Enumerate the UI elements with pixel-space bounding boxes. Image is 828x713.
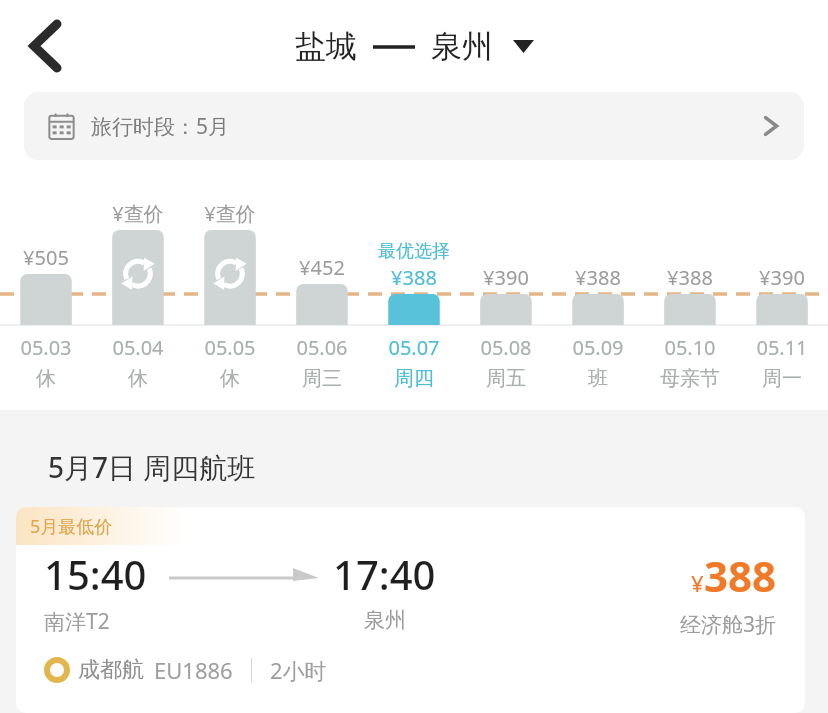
staticText: 05.09	[552, 334, 644, 361]
staticText: 388	[704, 547, 777, 604]
staticText: 05.03	[0, 334, 92, 361]
staticText: 泉州	[364, 607, 406, 633]
button[interactable]: ¥505	[0, 194, 92, 394]
staticText: 周一	[736, 366, 828, 391]
staticText: 5月最低价	[30, 514, 113, 539]
staticText: 05.05	[184, 334, 276, 361]
button[interactable]: ¥388	[644, 194, 736, 394]
staticText: 05.10	[644, 334, 736, 361]
button[interactable]: 盐城	[295, 27, 534, 66]
staticText: 经济舱3折	[680, 610, 777, 639]
staticText: 最优选择	[368, 240, 460, 263]
button[interactable]: ¥388	[552, 194, 644, 394]
staticText: ¥查价	[184, 200, 276, 227]
staticText: 班	[552, 366, 644, 391]
staticText: ¥388	[644, 264, 736, 291]
staticText: ¥390	[736, 264, 828, 291]
staticText: 05.11	[736, 334, 828, 361]
button[interactable]: 最优选择	[368, 194, 460, 394]
staticText: 休	[184, 366, 276, 391]
staticText: 泉州	[431, 27, 493, 66]
staticText: 南洋T2	[44, 607, 110, 636]
staticText: 母亲节	[644, 366, 736, 391]
button[interactable]: ¥390	[460, 194, 552, 394]
staticText: 17:40	[333, 547, 436, 601]
staticText: 15:40	[44, 547, 147, 601]
staticText: ¥505	[0, 244, 92, 271]
staticText: 5月7日 周四航班	[48, 448, 256, 486]
staticText: ¥	[691, 568, 704, 598]
button[interactable]: Back	[16, 17, 74, 75]
button[interactable]: ¥查价	[92, 194, 184, 394]
staticText: 周五	[460, 366, 552, 391]
staticText: 周四	[368, 366, 460, 391]
staticText: 成都航	[78, 656, 144, 684]
staticText: 周三	[276, 366, 368, 391]
staticText: EU1886	[154, 655, 233, 685]
staticText: 05.07	[368, 334, 460, 361]
staticText: 旅行时段：5月	[91, 112, 230, 141]
staticText: 05.08	[460, 334, 552, 361]
staticText: 休	[92, 366, 184, 391]
staticText: 05.04	[92, 334, 184, 361]
button[interactable]: ¥390	[736, 194, 828, 394]
button[interactable]: ¥查价	[184, 194, 276, 394]
staticText: 2小时	[270, 655, 327, 685]
button[interactable]: ¥452	[276, 194, 368, 394]
staticText: ¥388	[552, 264, 644, 291]
staticText: ¥452	[276, 254, 368, 281]
staticText: ¥390	[460, 264, 552, 291]
button[interactable]: 旅行时段：5月	[24, 92, 804, 160]
staticText: 05.06	[276, 334, 368, 361]
staticText: ¥388	[368, 264, 460, 291]
button[interactable]: 5月最低价	[16, 507, 805, 713]
staticText: ¥查价	[92, 200, 184, 227]
staticText: 休	[0, 366, 92, 391]
staticText: 盐城	[295, 27, 357, 66]
